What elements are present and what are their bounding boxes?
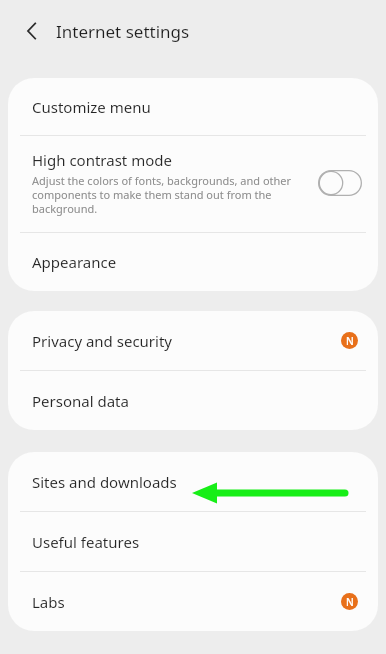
staticText: Labs <box>32 592 341 612</box>
staticText: Appearance <box>32 252 358 272</box>
button[interactable]: High contrast mode <box>8 136 378 232</box>
button[interactable]: Appearance <box>8 233 378 291</box>
staticText: Sites and downloads <box>32 472 358 492</box>
staticText: N <box>346 595 354 609</box>
staticText: High contrast mode <box>32 150 172 170</box>
button[interactable]: Customize menu <box>8 78 378 135</box>
button[interactable]: Back <box>14 13 50 49</box>
button[interactable]: High contrast mode toggle, off <box>318 170 362 196</box>
staticText: Adjust the colors of fonts, backgrounds,… <box>32 173 308 216</box>
staticText: Customize menu <box>32 97 358 117</box>
staticText: Useful features <box>32 532 358 552</box>
staticText: Personal data <box>32 391 358 411</box>
button[interactable]: Privacy and security <box>8 311 378 370</box>
button[interactable]: Labs <box>8 572 378 631</box>
button[interactable]: Personal data <box>8 371 378 430</box>
staticText: N <box>346 334 354 348</box>
button[interactable]: Useful features <box>8 512 378 571</box>
staticText: Privacy and security <box>32 331 341 351</box>
staticText: Internet settings <box>56 20 190 43</box>
button[interactable]: Sites and downloads <box>8 452 378 511</box>
